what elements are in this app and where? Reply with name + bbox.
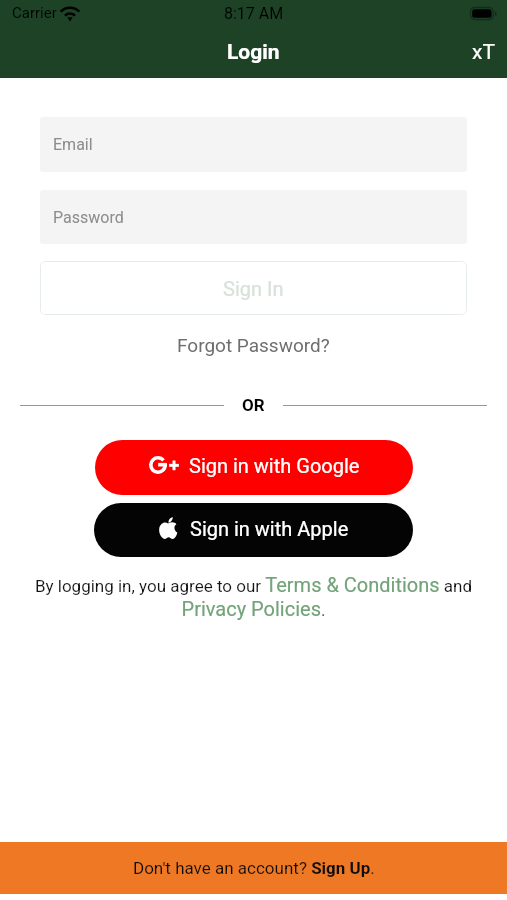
staticText: 8:17 AM	[224, 4, 284, 23]
button[interactable]: Sign in with Apple	[94, 503, 413, 557]
button[interactable]: Email	[40, 117, 467, 172]
staticText: Forgot Password?	[177, 334, 330, 356]
button[interactable]: Forgot Password?	[167, 327, 340, 363]
staticText: By logging in, you agree to our Terms & …	[26, 573, 481, 621]
button[interactable]: xT	[460, 30, 507, 75]
staticText: Sign in with Apple	[190, 517, 349, 540]
staticText: xT	[472, 40, 495, 65]
staticText: Sign in with Google	[189, 454, 360, 477]
staticText: Don't have an account? Sign Up.	[133, 858, 375, 878]
button[interactable]: Don't have an account? Sign Up.	[0, 842, 507, 894]
staticText: Carrier	[12, 4, 57, 22]
button[interactable]: Sign In	[40, 261, 467, 315]
staticText: Sign In	[223, 277, 284, 300]
button[interactable]: Sign in with Google	[95, 440, 413, 495]
staticText: Password	[53, 208, 124, 227]
button[interactable]: Password	[40, 190, 467, 244]
staticText: Email	[53, 135, 93, 154]
staticText: Login	[227, 40, 280, 65]
staticText: OR	[242, 395, 265, 415]
